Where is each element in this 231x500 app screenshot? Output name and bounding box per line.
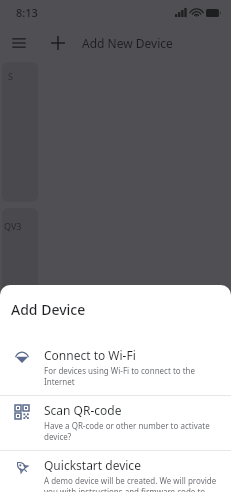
staticText: Have a QR-code or other number to activa…: [44, 420, 219, 442]
staticText: Connect to Wi-Fi: [44, 347, 136, 363]
staticText: Quickstart device: [44, 457, 141, 473]
staticText: For devices using Wi-Fi to connect to th…: [44, 365, 219, 387]
staticText: S: [8, 70, 13, 82]
staticText: Add New Device: [82, 35, 173, 51]
staticText: QV3: [4, 220, 22, 232]
button[interactable]: Quickstart: [0, 451, 231, 500]
staticText: Scan QR-code: [44, 402, 122, 418]
button[interactable]: QR code: [0, 396, 231, 450]
other: QR code: [12, 402, 32, 422]
button[interactable]: Menu: [0, 24, 38, 62]
other: Quickstart: [12, 457, 32, 477]
button[interactable]: Add New Device: [38, 24, 231, 62]
staticText: 8:13: [16, 5, 38, 20]
other: Wi-Fi: [12, 347, 32, 367]
staticText: Add Device: [11, 300, 86, 319]
button[interactable]: Wi-Fi: [0, 341, 231, 395]
staticText: A demo device will be created. We will p…: [44, 475, 219, 492]
